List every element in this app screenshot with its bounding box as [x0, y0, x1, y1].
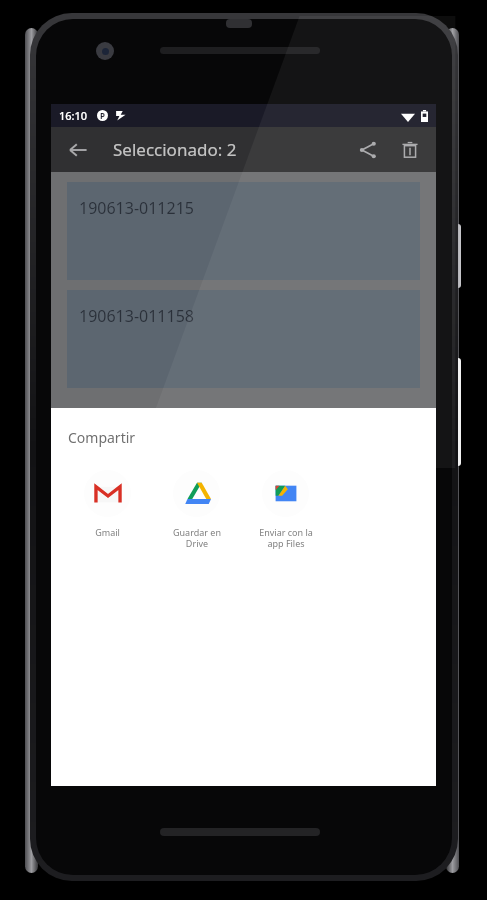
button[interactable]: Gmail [63, 468, 152, 540]
staticText: Gmail [95, 526, 120, 538]
button[interactable]: Back [57, 129, 99, 171]
staticText: Compartir [68, 428, 136, 447]
button[interactable]: Guardar en Drive [152, 468, 241, 551]
staticText: Guardar en Drive [173, 526, 221, 549]
button[interactable]: Delete [389, 129, 431, 171]
button[interactable]: 190613-011158 [67, 290, 420, 388]
staticText: 190613-011158 [79, 305, 194, 327]
staticText: 16:10 [59, 108, 88, 123]
button[interactable]: Share [347, 129, 389, 171]
button[interactable]: Enviar con la app Files [241, 468, 330, 551]
staticText: Enviar con la app Files [259, 526, 313, 549]
staticText: Seleccionado: 2 [113, 138, 237, 161]
button[interactable]: 190613-011215 [67, 182, 420, 280]
staticText: 190613-011215 [79, 197, 194, 219]
staticText: P [100, 110, 105, 121]
